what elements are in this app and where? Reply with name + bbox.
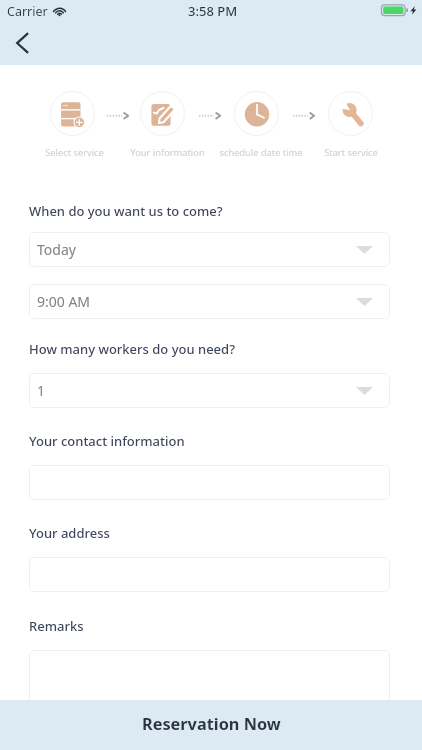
button[interactable] (29, 465, 390, 500)
staticText: 1 (37, 381, 46, 400)
button[interactable]: schedule date time (206, 88, 316, 162)
staticText: 3:58 PM (188, 2, 238, 20)
staticText: schedule date time (219, 146, 303, 159)
staticText: Your information (130, 146, 205, 159)
button[interactable]: Today (29, 232, 390, 267)
button[interactable]: 9:00 AM (29, 284, 390, 319)
staticText: Select service (45, 146, 104, 159)
staticText: Remarks (29, 617, 84, 635)
button[interactable]: Back (4, 25, 41, 62)
button[interactable]: Your information (112, 88, 222, 162)
staticText: Your contact information (29, 432, 185, 450)
staticText: Start service (324, 146, 378, 159)
staticText: Today (37, 240, 76, 259)
staticText: Your address (29, 524, 110, 542)
button[interactable]: Select service (19, 88, 129, 162)
staticText: How many workers do you need? (29, 340, 235, 358)
staticText: Reservation Now (142, 713, 281, 735)
button[interactable] (29, 650, 390, 712)
button[interactable]: 1 (29, 373, 390, 408)
button[interactable] (29, 557, 390, 592)
button[interactable]: Start service (296, 88, 406, 162)
staticText: When do you want us to come? (29, 202, 223, 220)
staticText: Carrier (7, 3, 48, 20)
button[interactable]: Reservation Now (0, 700, 422, 750)
staticText: 9:00 AM (37, 292, 91, 311)
